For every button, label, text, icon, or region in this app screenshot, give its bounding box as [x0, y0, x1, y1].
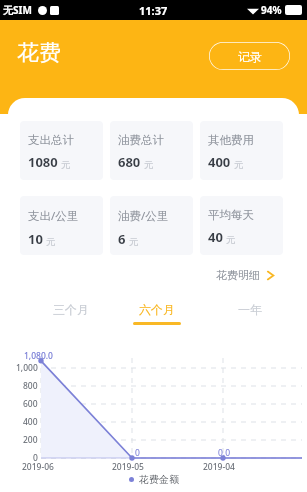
staticText: 油费/公里 [118, 208, 169, 224]
staticText: 元 [226, 234, 236, 246]
staticText: 元 [234, 159, 244, 171]
staticText: 10 [28, 230, 43, 248]
staticText: 三个月 [53, 302, 89, 317]
staticText: 800 [23, 380, 38, 392]
staticText: 11:37 [139, 3, 168, 18]
staticText: 元 [46, 236, 56, 248]
staticText: 0 [33, 452, 38, 464]
staticText: 记录 [238, 49, 262, 64]
staticText: 600 [23, 398, 38, 410]
staticText: 40 [208, 228, 223, 246]
staticText: 花费金额 [139, 473, 179, 486]
staticText: 0 [135, 447, 140, 459]
staticText: 1,000 [16, 362, 38, 374]
staticText: 支出/公里 [28, 208, 79, 224]
staticText: 6 [118, 230, 126, 248]
staticText: 无SIM [3, 3, 32, 17]
staticText: 0.0 [218, 447, 231, 459]
staticText: 其他费用 [208, 133, 254, 147]
staticText: 2019-05 [112, 461, 144, 473]
staticText: 六个月 [139, 302, 175, 317]
staticText: 元 [61, 159, 71, 171]
button[interactable]: 油费总计 [110, 121, 193, 180]
staticText: 680 [118, 153, 141, 171]
button[interactable]: 一年 [218, 302, 282, 332]
staticText: 支出总计 [28, 133, 74, 147]
staticText: 200 [23, 434, 38, 446]
button[interactable]: 油费/公里 [110, 196, 193, 255]
staticText: 油费总计 [118, 133, 164, 147]
staticText: 元 [129, 236, 139, 248]
staticText: 2019-04 [203, 461, 235, 473]
button[interactable]: 记录 [209, 42, 290, 70]
staticText: 花费明细 [216, 268, 260, 282]
button[interactable]: 其他费用 [200, 121, 283, 180]
staticText: 94% [261, 3, 282, 17]
staticText: 元 [144, 159, 154, 171]
staticText: 平均每天 [208, 208, 254, 222]
button[interactable]: 平均每天 [200, 196, 283, 255]
staticText: 1,080.0 [24, 350, 53, 362]
staticText: 一年 [238, 302, 262, 317]
button[interactable]: 三个月 [39, 302, 103, 332]
button[interactable]: 花费明细 [216, 264, 275, 286]
staticText: 1080 [28, 153, 58, 171]
staticText: 400 [23, 416, 38, 428]
staticText: 2019-06 [22, 461, 54, 473]
button[interactable]: 支出总计 [20, 121, 103, 180]
staticText: 花费 [17, 39, 61, 67]
staticText: 400 [208, 153, 231, 171]
button[interactable]: 支出/公里 [20, 196, 103, 255]
button[interactable]: 六个月 [125, 302, 189, 332]
